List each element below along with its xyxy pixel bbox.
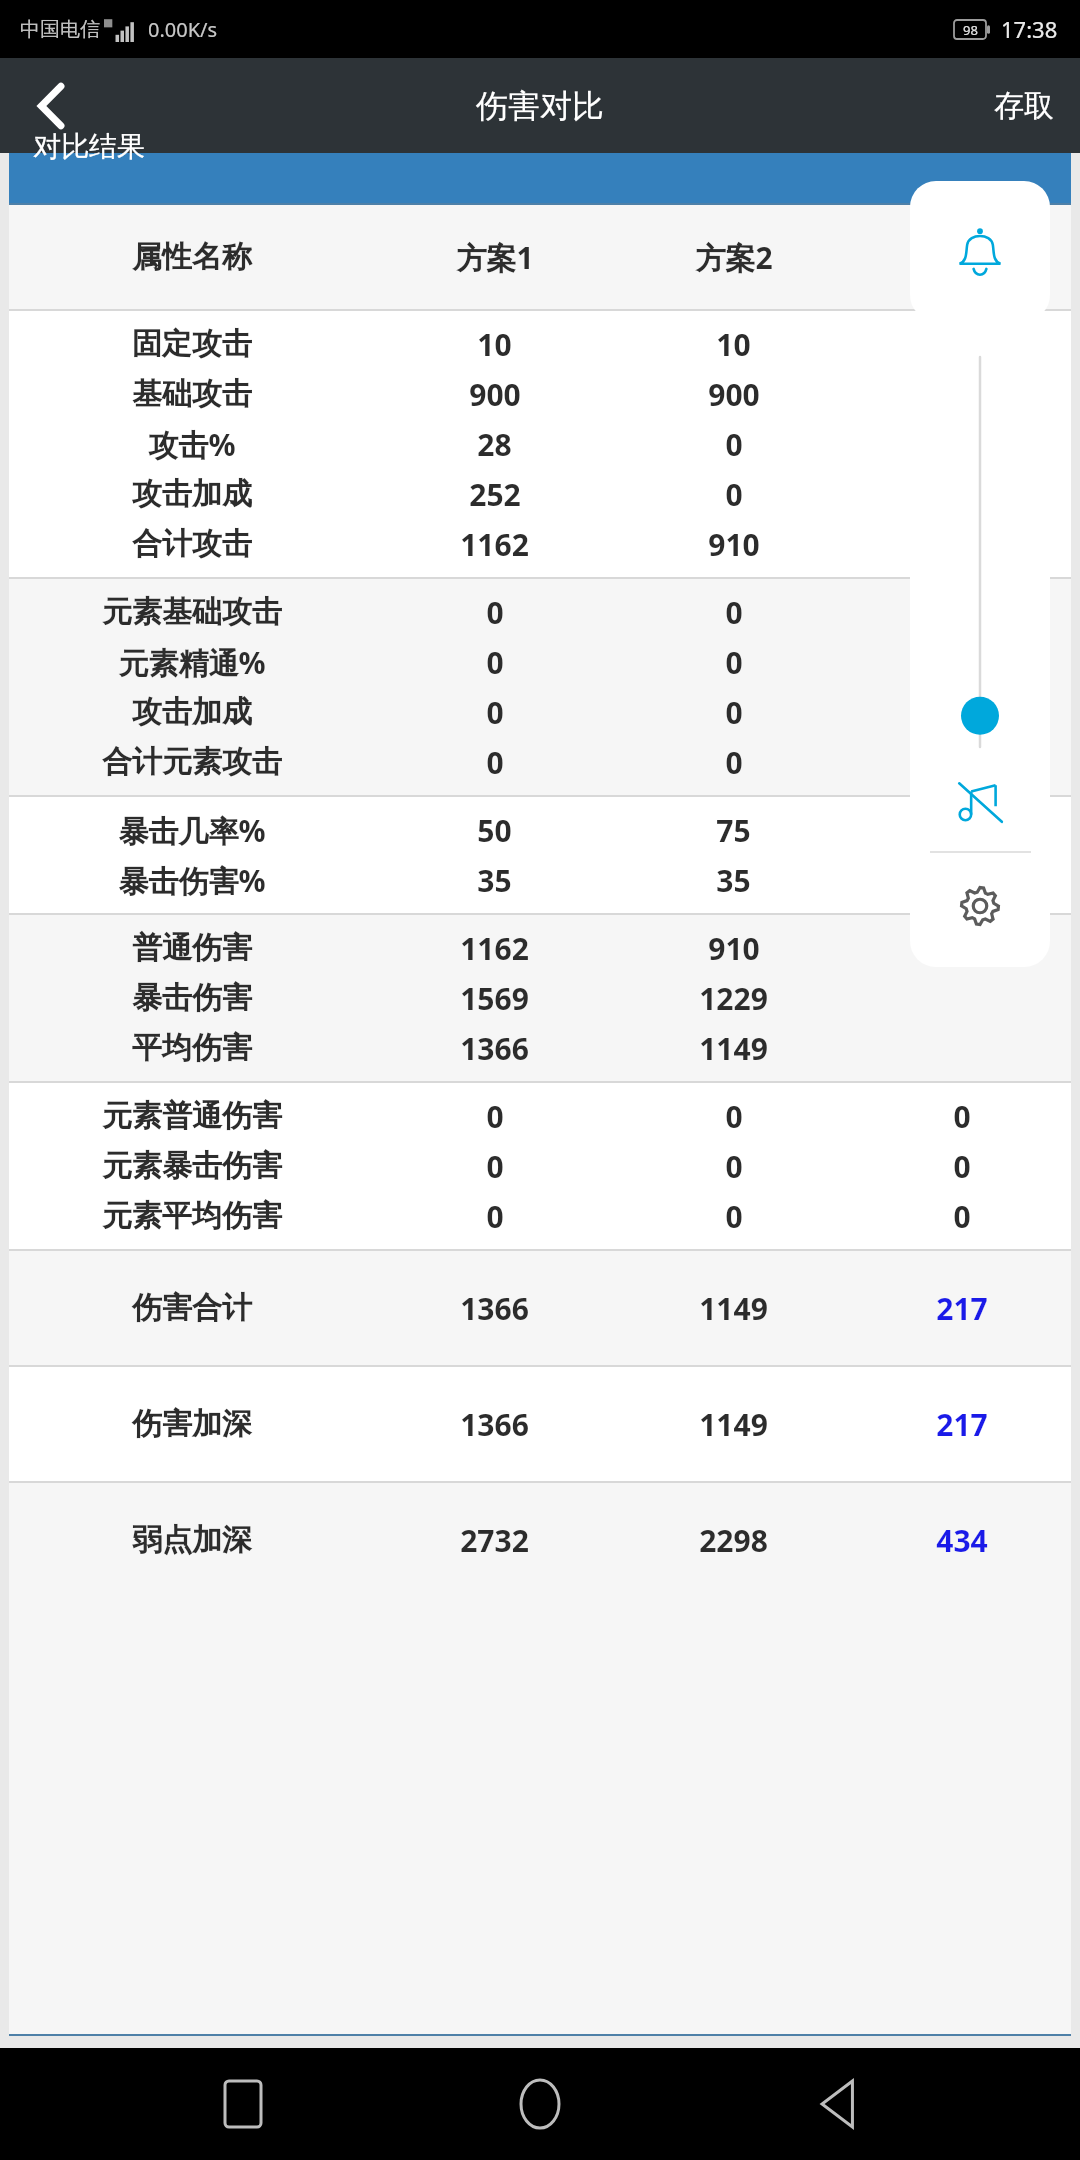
staticText: 中国电信 <box>20 17 100 42</box>
staticText: 35 <box>716 860 751 901</box>
staticText: 217 <box>936 1404 988 1445</box>
button[interactable]: 合计攻击 <box>9 519 1071 569</box>
staticText: 0 <box>725 692 743 733</box>
staticText: 暴击伤害% <box>118 860 266 901</box>
staticText: 0 <box>486 642 504 683</box>
staticText: 2732 <box>460 1520 529 1561</box>
staticText: 攻击% <box>148 424 236 465</box>
staticText: 0 <box>486 1096 504 1137</box>
staticText: 1569 <box>460 978 529 1019</box>
button[interactable]: 固定攻击 <box>9 319 1071 369</box>
staticText: 元素平均伤害 <box>102 1197 282 1235</box>
staticText: 元素暴击伤害 <box>102 1147 282 1185</box>
button[interactable]: 平均伤害 <box>9 1023 1071 1073</box>
button[interactable]: Home <box>485 2049 595 2159</box>
staticText: 0 <box>486 1146 504 1187</box>
staticText: 0.00K/s <box>148 16 218 43</box>
staticText: 元素基础攻击 <box>102 593 282 631</box>
staticText: 伤害加深 <box>132 1405 252 1443</box>
staticText: 35 <box>477 860 512 901</box>
staticText: 0 <box>725 592 743 633</box>
button[interactable]: 伤害合计 <box>9 1283 1071 1333</box>
staticText: 0 <box>486 742 504 783</box>
staticText: 50 <box>477 810 512 851</box>
button[interactable]: 属性名称 <box>9 223 1071 291</box>
button[interactable]: 攻击% <box>9 419 1071 469</box>
staticText: 0 <box>725 1146 743 1187</box>
button[interactable]: 攻击加成 <box>9 687 1071 737</box>
button[interactable]: 元素精通% <box>9 637 1071 687</box>
staticText: 900 <box>708 374 760 415</box>
button[interactable]: 暴击伤害 <box>9 973 1071 1023</box>
staticText: 平均伤害 <box>132 1029 252 1067</box>
button[interactable]: Volume <box>940 357 1020 747</box>
staticText: 0 <box>725 1096 743 1137</box>
staticText: 元素普通伤害 <box>102 1097 282 1135</box>
staticText: 1149 <box>699 1404 768 1445</box>
staticText: 1149 <box>699 1288 768 1329</box>
button[interactable]: 攻击加成 <box>9 469 1071 519</box>
staticText: 合计元素攻击 <box>102 743 282 781</box>
staticText: 攻击加成 <box>132 693 252 731</box>
staticText: 暴击伤害 <box>132 979 252 1017</box>
staticText: 暴击几率% <box>118 810 266 851</box>
staticText: 0 <box>725 1196 743 1237</box>
staticText: 1366 <box>460 1288 529 1329</box>
button[interactable]: 弱点加深 <box>9 1515 1071 1565</box>
button[interactable]: Recents <box>188 2049 298 2159</box>
staticText: 75 <box>716 810 751 851</box>
button[interactable]: 暴击几率% <box>9 805 1071 855</box>
button[interactable]: 元素普通伤害 <box>9 1091 1071 1141</box>
button[interactable]: Settings <box>941 867 1019 945</box>
staticText: 1366 <box>460 1404 529 1445</box>
staticText: 1162 <box>460 928 529 969</box>
staticText: 固定攻击 <box>132 325 252 363</box>
staticText: 存取 <box>994 87 1054 125</box>
staticText: 伤害合计 <box>132 1289 252 1327</box>
staticText: 0 <box>953 1096 971 1137</box>
button[interactable]: 存取 <box>968 58 1080 153</box>
button[interactable]: 合计元素攻击 <box>9 737 1071 787</box>
staticText: 方案1 <box>456 237 534 278</box>
staticText: 0 <box>725 742 743 783</box>
button[interactable]: 伤害加深 <box>9 1399 1071 1449</box>
staticText: 434 <box>936 1520 988 1561</box>
button[interactable]: 元素基础攻击 <box>9 587 1071 637</box>
button[interactable]: Ringer mode <box>910 181 1050 321</box>
staticText: 0 <box>725 642 743 683</box>
staticText: 1229 <box>699 978 768 1019</box>
staticText: 98 <box>963 21 978 39</box>
staticText: 1366 <box>460 1028 529 1069</box>
staticText: 元素精通% <box>118 642 266 683</box>
staticText: 伤害对比 <box>476 86 604 126</box>
button[interactable]: 暴击伤害% <box>9 855 1071 905</box>
staticText: 10 <box>716 324 751 365</box>
staticText: 0 <box>953 1146 971 1187</box>
staticText: 17:38 <box>1001 14 1058 44</box>
staticText: 0 <box>486 1196 504 1237</box>
staticText: 0 <box>953 1196 971 1237</box>
button[interactable]: Back <box>783 2049 893 2159</box>
staticText: 普通伤害 <box>132 929 252 967</box>
staticText: 攻击加成 <box>132 475 252 513</box>
button[interactable]: Back <box>0 58 104 153</box>
staticText: 属性名称 <box>132 238 252 276</box>
staticText: 0 <box>725 474 743 515</box>
staticText: 910 <box>708 928 760 969</box>
button[interactable]: 元素平均伤害 <box>9 1191 1071 1241</box>
button[interactable]: 元素暴击伤害 <box>9 1141 1071 1191</box>
button[interactable]: 基础攻击 <box>9 369 1071 419</box>
staticText: 910 <box>708 524 760 565</box>
staticText: 2298 <box>699 1520 768 1561</box>
button[interactable]: 普通伤害 <box>9 923 1071 973</box>
staticText: 合计攻击 <box>132 525 252 563</box>
staticText: 0 <box>486 692 504 733</box>
staticText: 900 <box>469 374 521 415</box>
staticText: 0 <box>486 592 504 633</box>
staticText: 对比 <box>932 238 992 276</box>
staticText: 252 <box>469 474 521 515</box>
staticText: 1149 <box>699 1028 768 1069</box>
button[interactable]: Mute media <box>941 763 1019 841</box>
staticText: 217 <box>936 1288 988 1329</box>
staticText: 28 <box>477 424 512 465</box>
